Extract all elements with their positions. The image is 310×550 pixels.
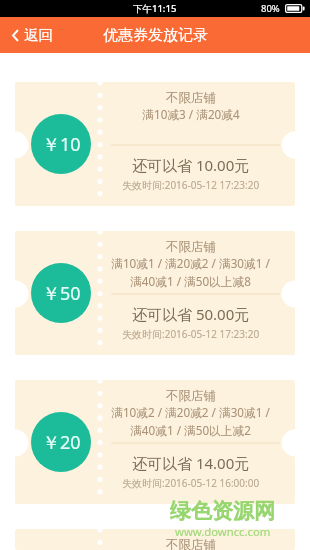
staticText: 失效时间:2016-05-12 17:23:20 bbox=[122, 327, 260, 341]
staticText: 满10减2 / 满20减2 / 满30减1 / bbox=[111, 404, 270, 420]
staticText: 还可以省 14.00元 bbox=[132, 453, 250, 473]
staticText: 80% bbox=[261, 2, 280, 15]
staticText: 还可以省 10.00元 bbox=[132, 155, 250, 175]
button[interactable]: 返回 bbox=[0, 21, 65, 49]
staticText: 不限店铺 bbox=[166, 90, 216, 106]
staticText: 优惠券发放记录 bbox=[103, 26, 208, 45]
staticText: 不限店铺 bbox=[166, 388, 216, 404]
button[interactable]: ￥10 bbox=[0, 82, 310, 206]
staticText: 不限店铺 bbox=[166, 239, 216, 255]
button[interactable]: ￥30 bbox=[0, 529, 310, 550]
staticText: 还可以省 50.00元 bbox=[132, 304, 250, 324]
staticText: ￥10 bbox=[42, 132, 81, 157]
staticText: 下午11:15 bbox=[133, 2, 177, 15]
staticText: 绿色资源网 bbox=[170, 498, 275, 524]
staticText: 返回 bbox=[24, 26, 53, 44]
staticText: www.downcc.com bbox=[175, 524, 271, 539]
staticText: 满10减3 / 满20减4 bbox=[142, 106, 240, 122]
button[interactable]: ￥20 bbox=[0, 380, 310, 504]
staticText: 失效时间:2016-05-12 17:23:20 bbox=[122, 178, 260, 192]
staticText: 满40减1 / 满50以上减8 bbox=[130, 273, 251, 289]
button[interactable]: ￥50 bbox=[0, 231, 310, 355]
staticText: ￥50 bbox=[42, 281, 81, 306]
staticText: 满10减1 / 满20减2 / 满30减1 / bbox=[111, 255, 270, 271]
staticText: 失效时间:2016-05-12 16:00:00 bbox=[122, 476, 260, 490]
staticText: ￥20 bbox=[42, 430, 81, 455]
staticText: 满40减1 / 满50以上减2 bbox=[130, 422, 251, 438]
staticText: 不限店铺 bbox=[166, 537, 216, 550]
